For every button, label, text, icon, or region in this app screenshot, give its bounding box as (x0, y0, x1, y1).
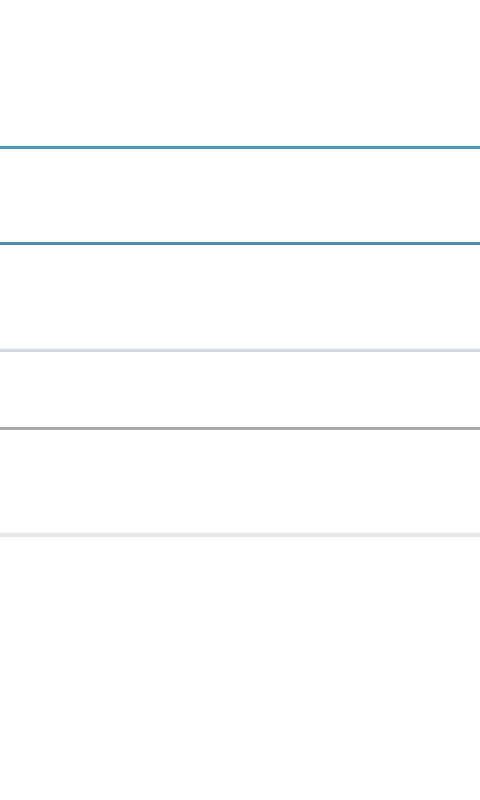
button[interactable]: Field three (0, 245, 480, 352)
button[interactable]: Field one (0, 0, 480, 149)
button[interactable]: Field four (0, 352, 480, 430)
button[interactable]: Field two (0, 149, 480, 245)
button[interactable]: Field five (0, 430, 480, 537)
